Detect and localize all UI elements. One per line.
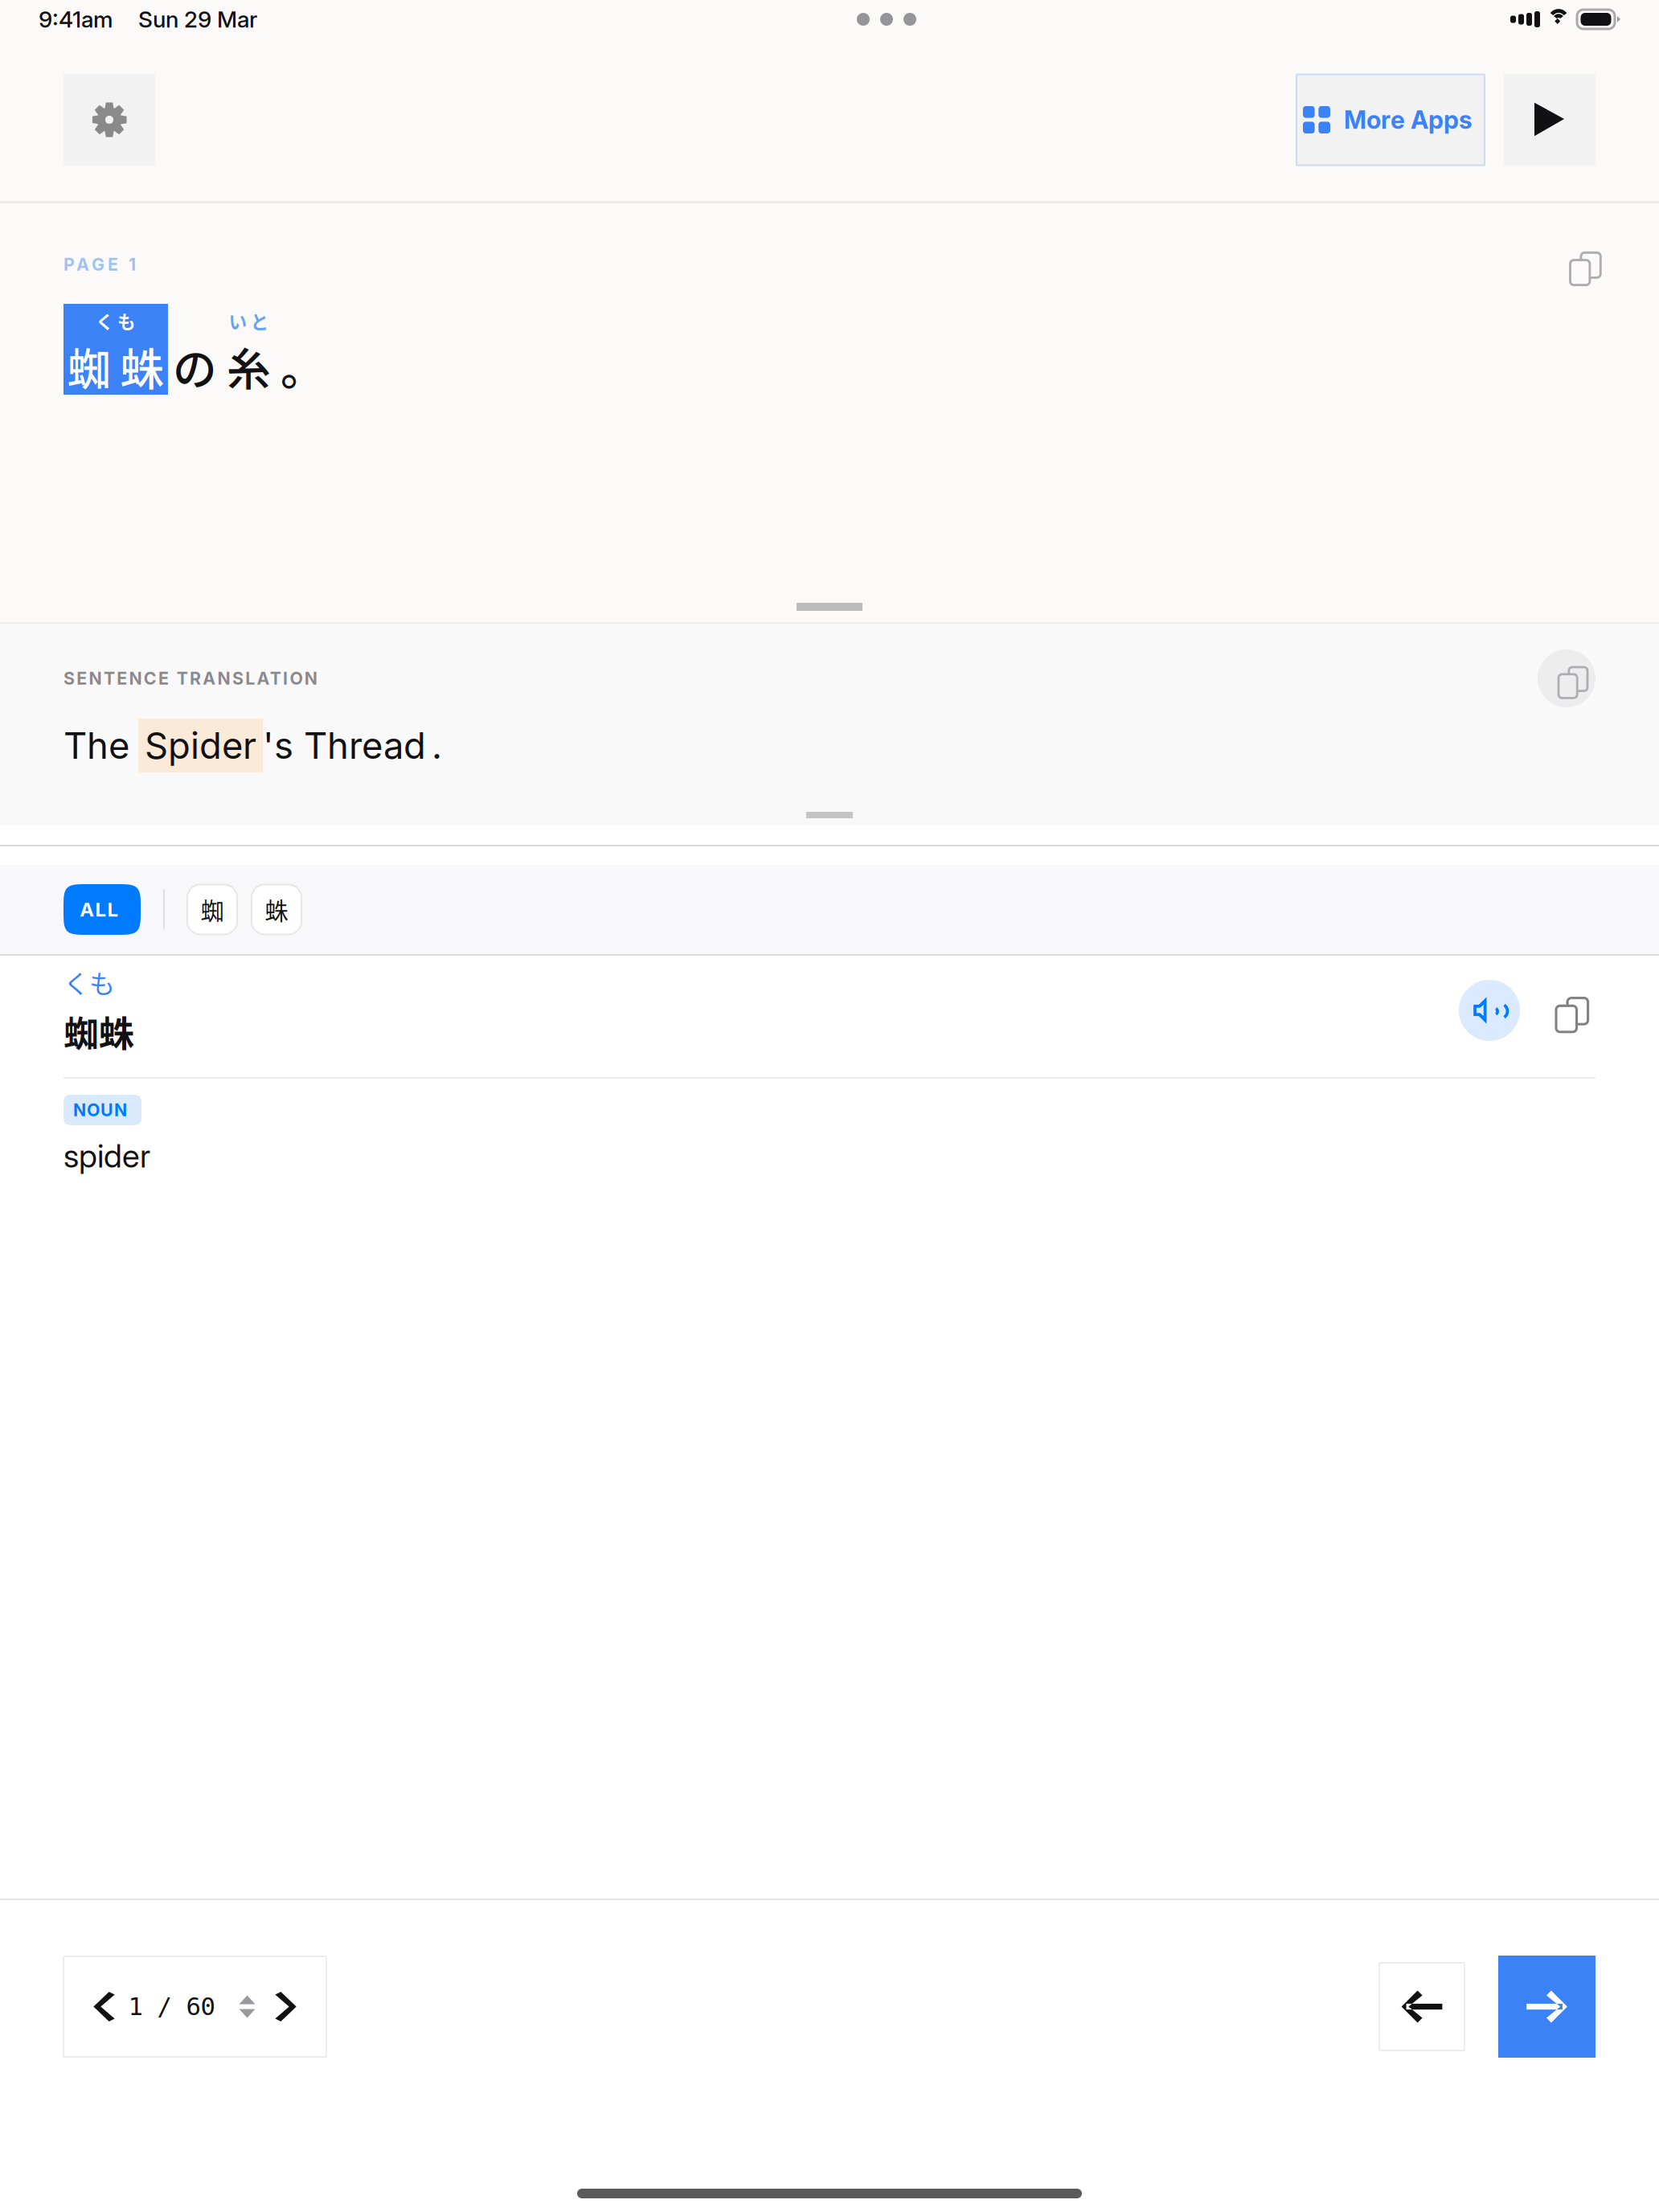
button[interactable]: Previous page xyxy=(69,1956,128,2057)
staticText: くも xyxy=(96,308,136,334)
staticText: 蜘蛛 xyxy=(63,1006,134,1057)
staticText: 。 xyxy=(281,334,325,398)
staticText: 蛛 xyxy=(265,892,288,927)
staticText: PAGE 1 xyxy=(63,254,143,275)
staticText: Thread xyxy=(304,723,426,768)
staticText: いと xyxy=(229,308,269,334)
staticText: 9:41am xyxy=(39,6,119,33)
button[interactable]: Forward xyxy=(1498,1956,1596,2058)
staticText: 蜘 xyxy=(201,892,224,927)
button[interactable]: Settings xyxy=(63,74,155,166)
staticText: 糸 xyxy=(227,334,271,398)
button[interactable]: Play pronunciation xyxy=(1459,980,1520,1041)
staticText: 1 / 60 xyxy=(128,1992,229,2021)
staticText: NOUN xyxy=(73,1100,132,1120)
staticText: Sun 29 Mar xyxy=(138,6,263,33)
button[interactable]: Copy sentence xyxy=(1562,248,1596,281)
button[interactable]: 蛛 xyxy=(252,885,301,934)
staticText: くも xyxy=(63,964,115,1001)
staticText: SENTENCE TRANSLATION xyxy=(63,668,323,689)
staticText: 蜘蛛 xyxy=(67,334,164,398)
staticText: Spider xyxy=(145,723,256,768)
button[interactable]: Copy translation xyxy=(1538,649,1596,707)
staticText: ALL xyxy=(80,898,124,921)
staticText: 's xyxy=(263,723,293,768)
staticText: spider xyxy=(63,1136,150,1175)
button[interactable]: Back xyxy=(1379,1963,1464,2050)
staticText: . xyxy=(432,723,442,768)
button[interactable]: Copy word xyxy=(1534,980,1596,1041)
staticText: The xyxy=(63,723,129,768)
button[interactable]: 蜘 xyxy=(187,885,237,934)
staticText: More Apps xyxy=(1344,105,1478,135)
button[interactable]: ALL xyxy=(63,884,141,935)
button[interactable]: Next page xyxy=(262,1956,321,2057)
button[interactable]: Play xyxy=(1504,74,1596,165)
staticText: の xyxy=(173,334,217,398)
button[interactable]: More Apps xyxy=(1296,74,1485,165)
